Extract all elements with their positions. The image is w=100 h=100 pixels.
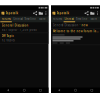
button[interactable]: Home: [16, 89, 32, 91]
staticText: Timeline: [24, 17, 36, 21]
staticText: Tapatalk: [57, 11, 70, 15]
button[interactable]: Recent apps: [32, 89, 48, 91]
staticText: Tapatalk: [6, 11, 19, 15]
staticText: Off Topic: [1, 34, 13, 38]
staticText: More: [39, 17, 46, 21]
button[interactable]: Recent apps: [84, 89, 100, 91]
staticText: Unread: [64, 17, 74, 21]
button[interactable]: Share: [84, 11, 89, 15]
staticText: Forums: [53, 17, 62, 21]
staticText: Timeline: [76, 17, 88, 21]
button[interactable]: General Discussion: [0, 22, 48, 33]
button[interactable]: More options: [44, 11, 48, 15]
staticText: 347 topics · 1,208 posts: [1, 28, 36, 31]
staticText: General Discussion: [52, 23, 78, 27]
button[interactable]: More: [88, 16, 100, 22]
button[interactable]: More: [36, 16, 48, 22]
button[interactable]: Unread: [12, 16, 24, 22]
staticText: More: [90, 17, 97, 21]
button[interactable]: Back: [0, 89, 16, 91]
button[interactable]: General Discussion: [51, 22, 100, 28]
button[interactable]: Back: [51, 89, 67, 91]
button[interactable]: Share: [32, 11, 38, 15]
button[interactable]: Home: [67, 89, 84, 91]
button[interactable]: Forums: [0, 16, 12, 22]
button[interactable]: Subscribe: [89, 11, 95, 15]
staticText: General Discussion: [1, 24, 28, 27]
button[interactable]: Welcome to the new forum layout: [51, 28, 100, 45]
button[interactable]: Forums: [51, 16, 63, 22]
staticText: 92 topics: [1, 38, 14, 42]
button[interactable]: Timeline: [75, 16, 88, 22]
staticText: Forums: [2, 17, 11, 21]
button[interactable]: More options: [95, 11, 99, 15]
button[interactable]: Unread: [63, 16, 75, 22]
button[interactable]: Timeline: [24, 16, 36, 22]
staticText: · new: [79, 23, 87, 27]
button[interactable]: Subscribe: [38, 11, 44, 15]
staticText: Welcome to the new forum layout: [52, 29, 98, 33]
staticText: Unread: [13, 17, 23, 21]
button[interactable]: Off Topic: [0, 33, 48, 43]
